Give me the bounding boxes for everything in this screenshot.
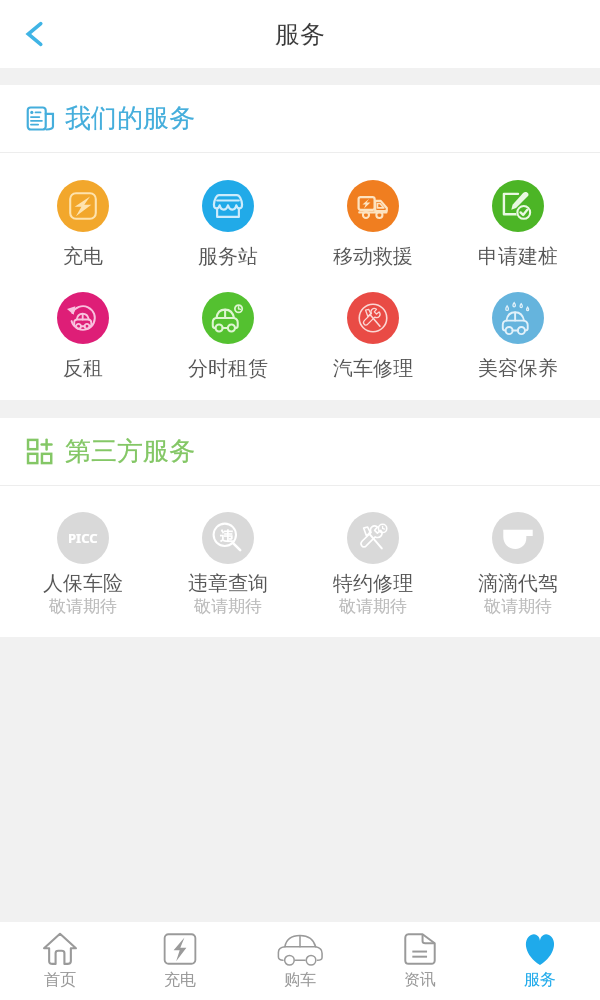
staticText: 违 — [220, 528, 233, 544]
staticText: 敬请期待 — [49, 596, 117, 617]
staticText: 特约修理 — [333, 571, 413, 596]
staticText: 违章查询 — [188, 571, 268, 596]
button[interactable]: Back — [8, 8, 60, 60]
staticText: 敬请期待 — [339, 596, 407, 617]
staticText: 敬请期待 — [194, 596, 262, 617]
button[interactable]: 分时租赁 — [155, 292, 300, 381]
button[interactable]: 服务站 — [155, 180, 300, 269]
staticText: PICC — [68, 529, 98, 547]
button[interactable]: 美容保养 — [445, 292, 590, 381]
staticText: 人保车险 — [43, 571, 123, 596]
staticText: 移动救援 — [333, 244, 413, 269]
staticText: 购车 — [284, 970, 316, 990]
button[interactable]: 特约修理 — [300, 512, 445, 617]
staticText: 分时租赁 — [188, 356, 268, 381]
staticText: 第三方服务 — [65, 435, 195, 468]
button[interactable]: 服务 — [480, 922, 600, 1000]
button[interactable]: 首页 — [0, 922, 120, 1000]
staticText: 首页 — [44, 970, 76, 990]
staticText: 服务 — [524, 970, 556, 990]
staticText: 服务站 — [198, 244, 258, 269]
staticText: 申请建桩 — [478, 244, 558, 269]
staticText: 充电 — [164, 970, 196, 990]
staticText: 汽车修理 — [333, 356, 413, 381]
staticText: 充电 — [63, 244, 103, 269]
staticText: 服务 — [275, 19, 325, 50]
button[interactable]: 申请建桩 — [445, 180, 590, 269]
staticText: 资讯 — [404, 970, 436, 990]
staticText: 我们的服务 — [65, 102, 195, 135]
button[interactable]: 充电 — [10, 180, 155, 269]
button[interactable]: 资讯 — [360, 922, 480, 1000]
staticText: 敬请期待 — [484, 596, 552, 617]
button[interactable]: 汽车修理 — [300, 292, 445, 381]
staticText: 反租 — [63, 356, 103, 381]
staticText: 美容保养 — [478, 356, 558, 381]
button[interactable]: 违 — [155, 512, 300, 617]
button[interactable]: 充电 — [120, 922, 240, 1000]
button[interactable]: 移动救援 — [300, 180, 445, 269]
button[interactable]: 购车 — [240, 922, 360, 1000]
button[interactable]: PICC — [10, 512, 155, 617]
button[interactable]: 滴滴代驾 — [445, 512, 590, 617]
staticText: 滴滴代驾 — [478, 571, 558, 596]
button[interactable]: 反租 — [10, 292, 155, 381]
